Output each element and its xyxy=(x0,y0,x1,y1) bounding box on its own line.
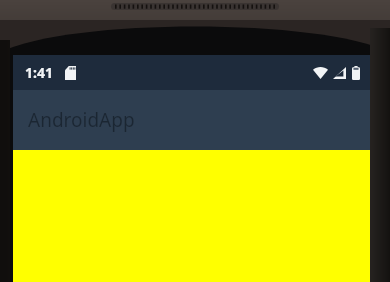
staticText: 1:41 xyxy=(25,63,53,82)
button[interactable]: AndroidApp xyxy=(13,90,370,150)
staticText: AndroidApp xyxy=(28,107,135,133)
